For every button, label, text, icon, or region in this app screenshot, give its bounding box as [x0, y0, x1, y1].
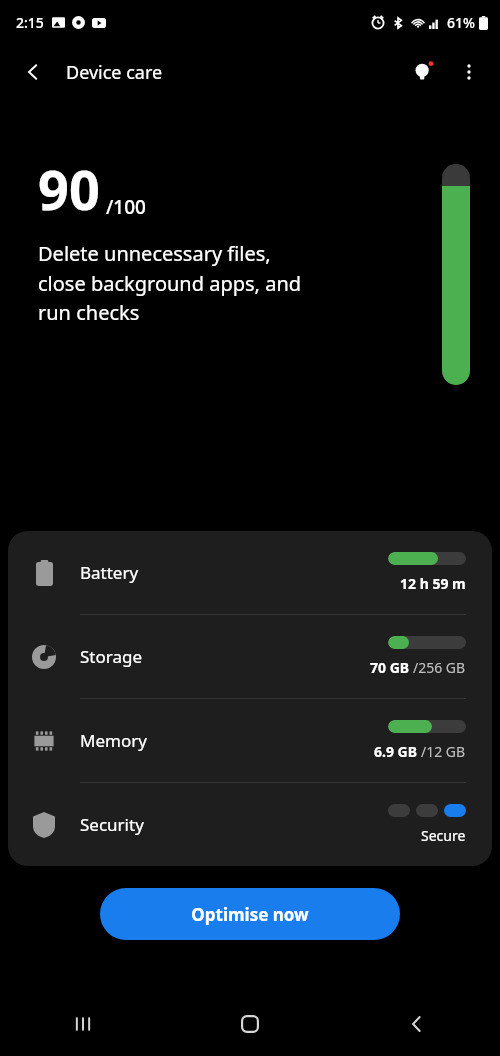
- staticText: Optimise now: [191, 903, 309, 926]
- button[interactable]: Back: [333, 992, 500, 1056]
- staticText: Device care: [66, 60, 163, 85]
- button[interactable]: Security: [8, 783, 492, 866]
- button[interactable]: Recent apps: [0, 992, 166, 1056]
- staticText: 12 h 59 m: [400, 574, 466, 593]
- staticText: Security: [80, 813, 144, 836]
- staticText: 6.9 GB: [374, 742, 421, 761]
- staticText: /256 GB: [413, 658, 466, 677]
- button[interactable]: Memory: [8, 699, 492, 782]
- staticText: Storage: [80, 645, 143, 668]
- staticText: /12 GB: [421, 742, 466, 761]
- staticText: Secure: [421, 826, 466, 845]
- button[interactable]: Battery: [8, 531, 492, 614]
- button[interactable]: Back: [10, 49, 56, 95]
- staticText: 90: [38, 152, 100, 226]
- staticText: Delete unnecessary files, close backgrou…: [38, 240, 302, 326]
- button[interactable]: Tips: [400, 49, 446, 95]
- button[interactable]: More options: [446, 49, 492, 95]
- staticText: 2:15: [16, 13, 44, 32]
- staticText: /100: [106, 194, 146, 220]
- button[interactable]: Storage: [8, 615, 492, 698]
- staticText: Memory: [80, 729, 147, 752]
- staticText: 61%: [447, 13, 475, 32]
- button[interactable]: Optimise now: [100, 888, 400, 940]
- button[interactable]: Home: [166, 992, 333, 1056]
- staticText: Battery: [80, 561, 139, 584]
- staticText: 70 GB: [370, 658, 413, 677]
